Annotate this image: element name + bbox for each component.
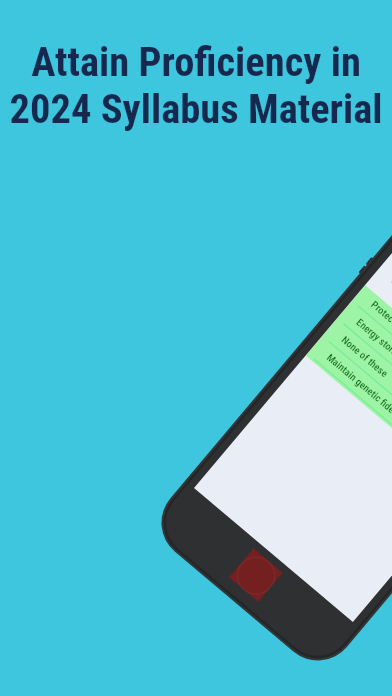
button[interactable] xyxy=(306,338,392,490)
button[interactable]: Home xyxy=(229,548,283,602)
button[interactable] xyxy=(335,303,392,455)
staticText: 2024 Syllabus Material xyxy=(9,85,383,132)
button[interactable] xyxy=(350,285,392,437)
button[interactable] xyxy=(321,321,392,472)
staticText: Attain Proficiency in xyxy=(31,38,361,85)
